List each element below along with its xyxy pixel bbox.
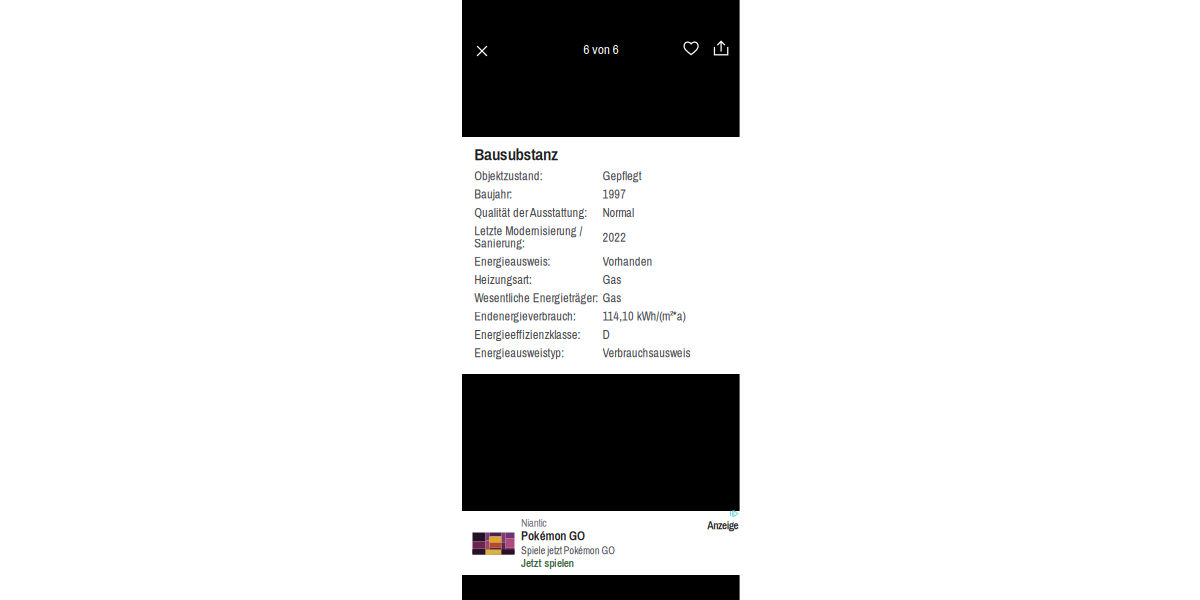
staticText: Gepflegt <box>602 168 642 184</box>
staticText: Baujahr: <box>474 186 512 202</box>
staticText: Niantic <box>521 515 546 530</box>
staticText: Bausubstanz <box>474 142 558 166</box>
staticText: Gas <box>602 290 621 306</box>
staticText: Objektzustand: <box>474 168 543 184</box>
staticText: Energieeffizienzklasse: <box>474 326 581 343</box>
staticText: 114,10 kWh/(m²*a) <box>602 308 686 324</box>
button[interactable]: Schließen <box>469 39 495 63</box>
staticText: Sanierung: <box>474 235 525 251</box>
staticText: Endenergieverbrauch: <box>474 308 576 324</box>
staticText: Energieausweistyp: <box>474 344 564 361</box>
button[interactable]: Merken <box>680 36 703 60</box>
staticText: 6 von 6 <box>583 40 618 58</box>
staticText: Gas <box>602 271 621 288</box>
button[interactable]: Teilen <box>710 36 733 60</box>
staticText: Energieausweis: <box>474 253 550 269</box>
button[interactable]: Niantic <box>462 511 740 575</box>
staticText: Anzeige <box>707 518 739 533</box>
staticText: Spiele jetzt Pokémon GO <box>521 544 615 558</box>
staticText: Wesentliche Energieträger: <box>474 290 598 306</box>
staticText: Jetzt spielen <box>521 555 574 571</box>
staticText: D <box>602 326 609 343</box>
staticText: Pokémon GO <box>521 527 585 544</box>
staticText: Qualität der Ausstattung: <box>474 204 587 221</box>
staticText: Normal <box>602 204 634 221</box>
staticText: Vorhanden <box>602 253 652 269</box>
staticText: Letzte Modernisierung / <box>474 222 583 239</box>
staticText: Heizungsart: <box>474 271 532 288</box>
staticText: Verbrauchsausweis <box>602 344 691 361</box>
staticText: 2022 <box>602 229 626 245</box>
staticText: 1997 <box>602 186 626 202</box>
